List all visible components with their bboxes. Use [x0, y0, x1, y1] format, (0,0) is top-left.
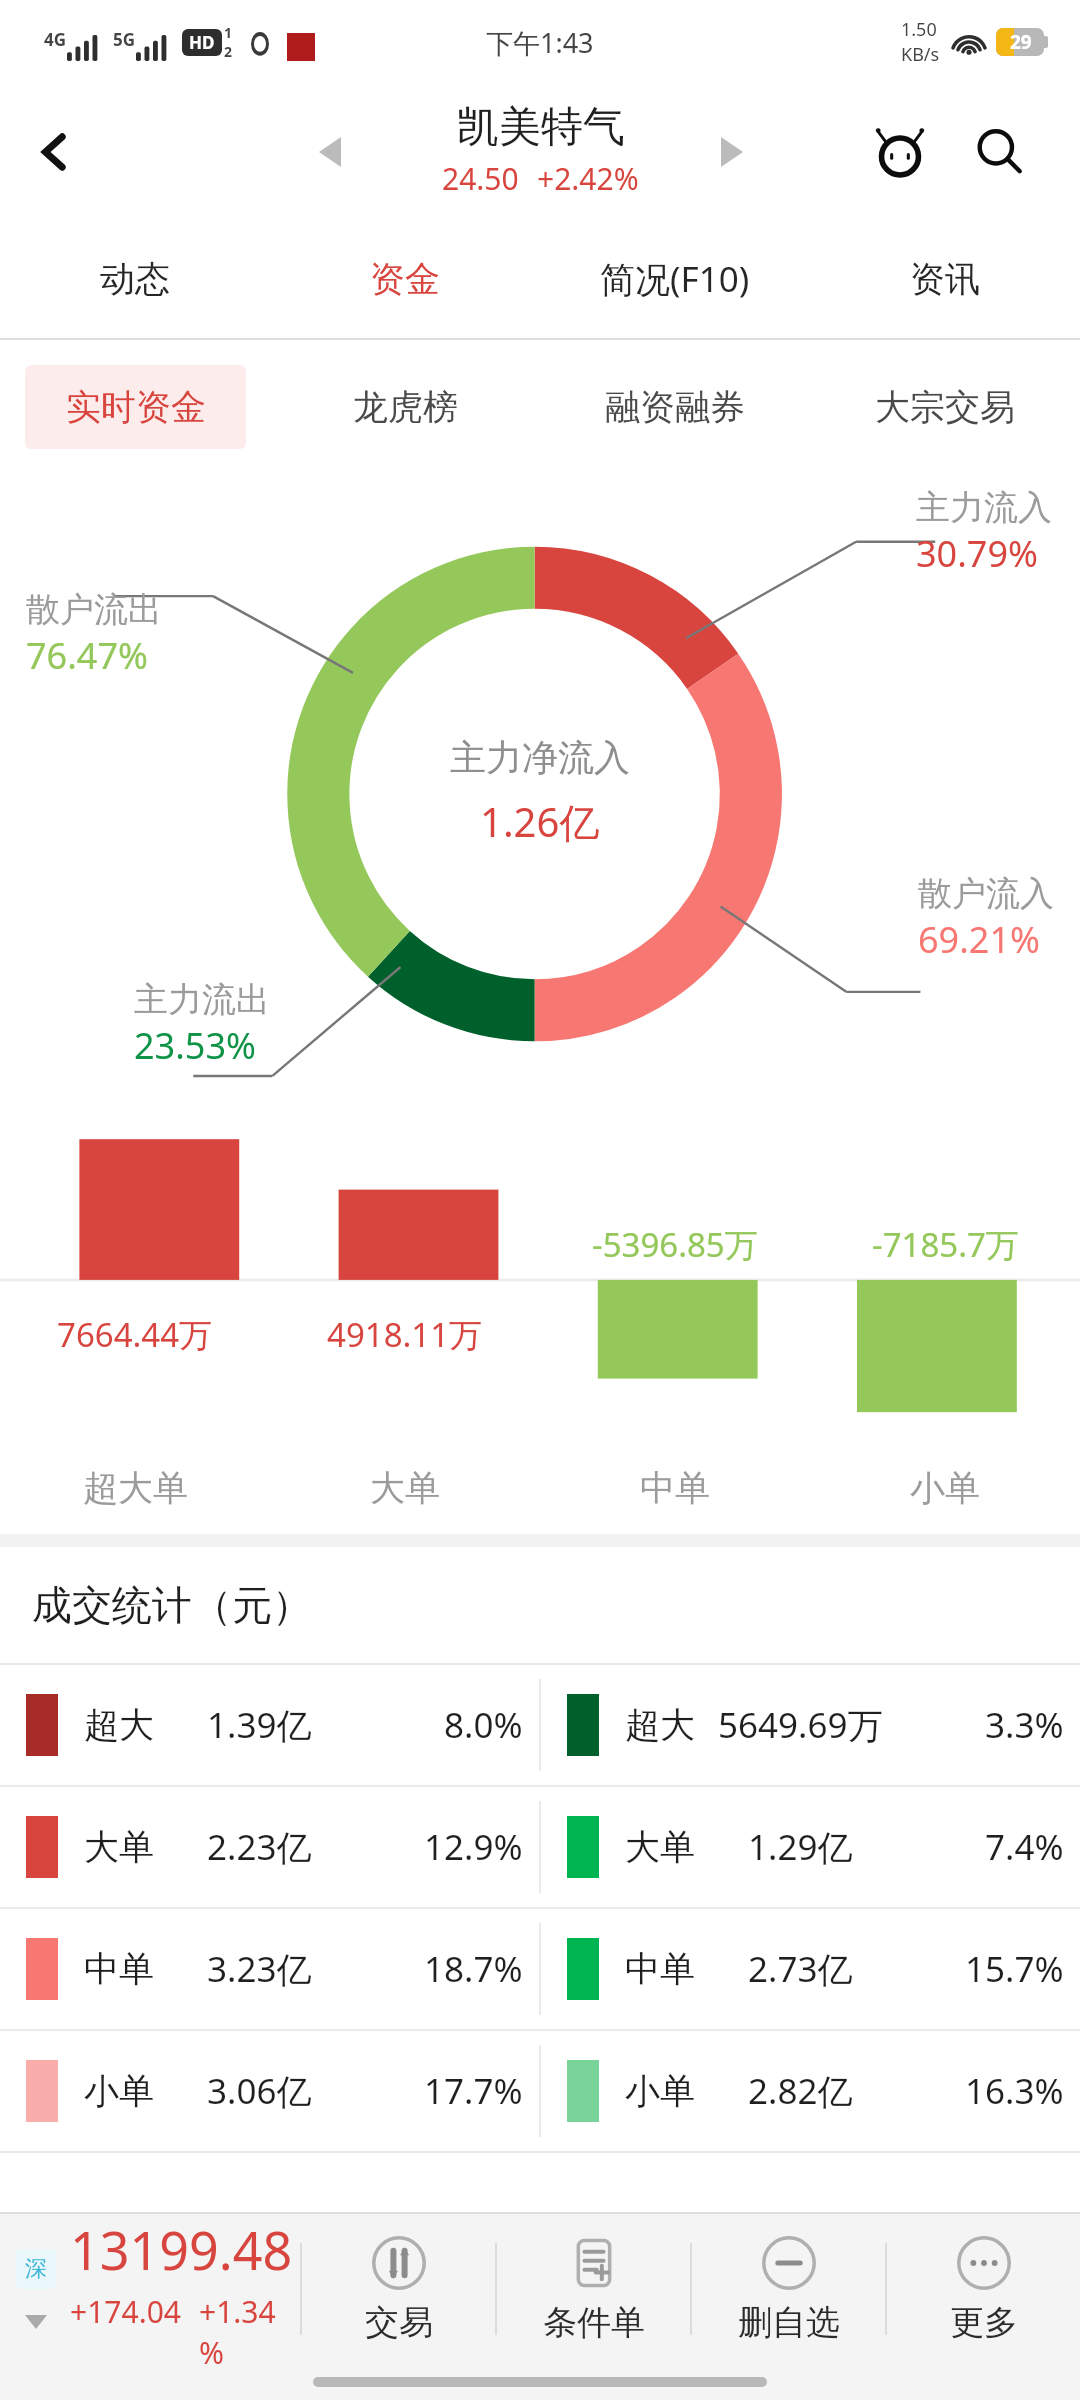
button[interactable]: 融资融券 — [540, 340, 810, 474]
staticText: 超大单 — [83, 1466, 188, 1510]
staticText: +2.42% — [537, 158, 639, 199]
staticText: 12.9% — [424, 1823, 523, 1871]
button[interactable]: 智能助手 — [850, 97, 950, 207]
staticText: 69.21% — [918, 915, 1040, 964]
staticText: 2 — [224, 42, 233, 61]
staticText: 条件单 — [543, 2301, 645, 2344]
staticText: 深 — [25, 2255, 47, 2283]
button[interactable]: 交易 — [302, 2214, 495, 2364]
staticText: 24.50 — [442, 158, 519, 199]
staticText: 散户流出 — [26, 588, 162, 631]
staticText: 5649.69万 — [718, 1701, 883, 1749]
staticText: 29 — [1010, 29, 1032, 55]
staticText: 主力流出 — [134, 978, 270, 1021]
staticText: 1 — [224, 23, 233, 42]
staticText: 中单 — [84, 1947, 154, 1991]
staticText: 5G — [113, 28, 136, 51]
staticText: KB/s — [901, 42, 940, 67]
button[interactable]: 条件单 — [497, 2214, 690, 2364]
button[interactable]: 超大 — [0, 1665, 1080, 1785]
button[interactable]: 中单 — [0, 1909, 1080, 2029]
staticText: 下午1:43 — [486, 24, 594, 61]
staticText: 动态 — [100, 257, 170, 301]
staticText: 1.26亿 — [480, 794, 600, 849]
staticText: 资金 — [370, 257, 440, 301]
button[interactable]: 小单 — [0, 2031, 1080, 2151]
staticText: +1.34% — [199, 2291, 300, 2364]
staticText: 2.23亿 — [207, 1823, 312, 1871]
button[interactable]: 大宗交易 — [810, 340, 1080, 474]
staticText: 1.39亿 — [207, 1701, 312, 1749]
staticText: 龙虎榜 — [353, 385, 458, 429]
staticText: 删自选 — [738, 2301, 840, 2344]
staticText: 7.4% — [985, 1823, 1064, 1871]
button[interactable]: 龙虎榜 — [270, 340, 540, 474]
staticText: 资讯 — [910, 257, 980, 301]
button[interactable]: 搜索 — [950, 97, 1050, 207]
staticText: 3.06亿 — [207, 2067, 312, 2115]
button[interactable]: 实时资金 — [0, 340, 270, 474]
staticText: 3.3% — [985, 1701, 1064, 1749]
staticText: 小单 — [910, 1466, 980, 1510]
button[interactable]: 深 — [0, 2214, 300, 2364]
button[interactable]: 简况(F10) — [540, 220, 810, 338]
staticText: 凯美特气 — [457, 101, 625, 154]
staticText: 交易 — [365, 2301, 433, 2344]
button[interactable]: 下一只 — [702, 102, 762, 202]
staticText: 76.47% — [26, 631, 148, 680]
button[interactable]: 大单 — [0, 1787, 1080, 1907]
staticText: 简况(F10) — [600, 255, 750, 303]
staticText: 成交统计（元） — [32, 1580, 312, 1630]
button[interactable]: 资讯 — [810, 220, 1080, 338]
staticText: 主力净流入 — [450, 735, 630, 780]
staticText: 小单 — [625, 2069, 695, 2113]
staticText: -5396.85万 — [592, 1222, 758, 1267]
staticText: 散户流入 — [918, 872, 1054, 915]
staticText: 中单 — [640, 1466, 710, 1510]
staticText: 16.3% — [965, 2067, 1064, 2115]
staticText: 超大 — [84, 1703, 154, 1747]
staticText: 更多 — [950, 2301, 1018, 2344]
staticText: 实时资金 — [66, 385, 206, 429]
staticText: 中单 — [625, 1947, 695, 1991]
staticText: 4918.11万 — [327, 1312, 483, 1357]
staticText: 7664.44万 — [57, 1312, 213, 1357]
staticText: 小单 — [84, 2069, 154, 2113]
staticText: 主力流入 — [916, 486, 1052, 529]
button[interactable]: 资金 — [270, 220, 540, 338]
button[interactable]: 动态 — [0, 220, 270, 338]
staticText: 3.23亿 — [207, 1945, 312, 1993]
staticText: 30.79% — [916, 529, 1038, 578]
staticText: 17.7% — [424, 2067, 523, 2115]
staticText: 大单 — [370, 1466, 440, 1510]
staticText: 15.7% — [965, 1945, 1064, 1993]
staticText: 4G — [44, 28, 67, 51]
staticText: 大单 — [84, 1825, 154, 1869]
staticText: 8.0% — [444, 1701, 523, 1749]
staticText: +174.04 — [70, 2291, 181, 2332]
staticText: 13199.48 — [70, 2214, 293, 2285]
staticText: 2.73亿 — [748, 1945, 853, 1993]
staticText: 1.29亿 — [748, 1823, 853, 1871]
staticText: 大单 — [625, 1825, 695, 1869]
staticText: 融资融券 — [605, 385, 745, 429]
button[interactable]: 返回 — [0, 84, 110, 220]
staticText: 大宗交易 — [875, 385, 1015, 429]
staticText: 2.82亿 — [748, 2067, 853, 2115]
button[interactable]: 删自选 — [692, 2214, 885, 2364]
staticText: 超大 — [625, 1703, 695, 1747]
staticText: -7185.7万 — [872, 1222, 1019, 1267]
staticText: 18.7% — [424, 1945, 523, 1993]
staticText: 23.53% — [134, 1021, 256, 1070]
button[interactable]: 上一只 — [300, 102, 360, 202]
staticText: HD — [189, 31, 215, 54]
button[interactable]: 更多 — [887, 2214, 1080, 2364]
staticText: 1.50 — [901, 17, 937, 42]
